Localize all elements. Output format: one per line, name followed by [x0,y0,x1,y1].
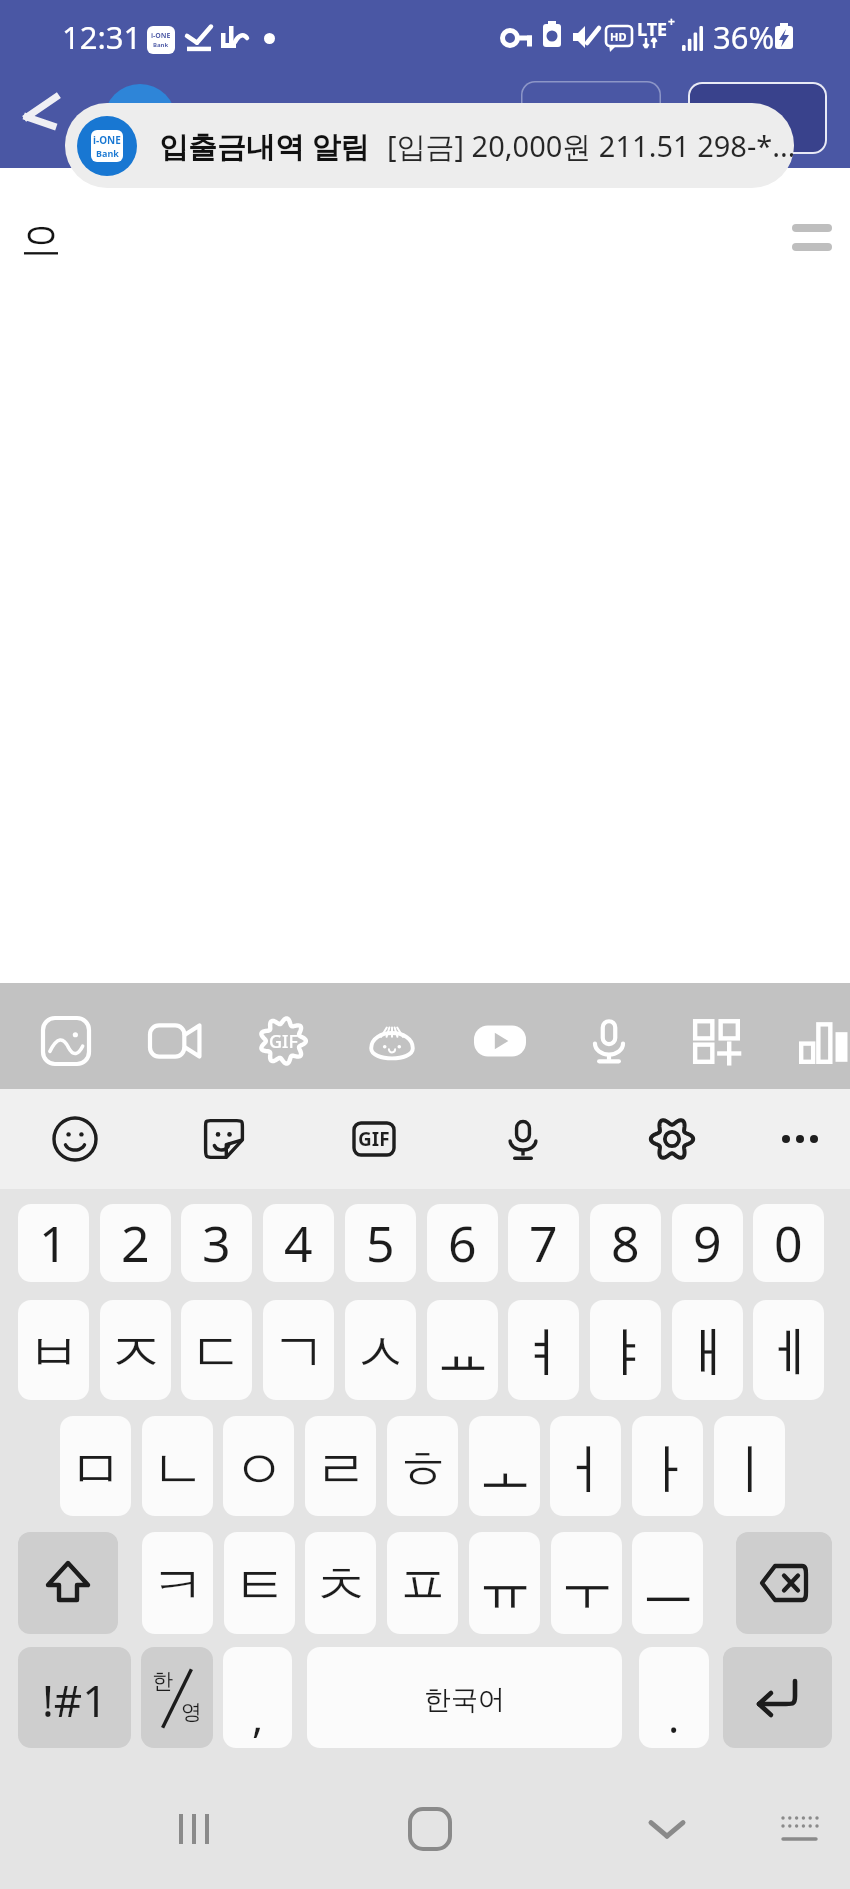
staticText: ㅕ [517,1319,571,1387]
button[interactable]: 9 [672,1204,743,1282]
staticText: ㅜ [560,1552,614,1620]
button[interactable]: 4 [263,1204,334,1282]
button[interactable]: Home [395,1794,465,1864]
button[interactable]: Sticker [358,1007,426,1075]
staticText: 한 [152,1668,173,1694]
button[interactable]: ㅅ [345,1300,416,1400]
button[interactable]: Settings [640,1107,704,1171]
button[interactable]: Apps [683,1007,751,1075]
staticText: 9 [693,1209,722,1277]
staticText: !#1 [42,1670,108,1730]
button[interactable]: More options [768,1107,832,1171]
button[interactable]: , [223,1647,292,1748]
button[interactable]: Enter [723,1647,832,1748]
button[interactable]: ㅗ [469,1416,540,1516]
staticText: ㅑ [599,1319,653,1387]
button[interactable]: ㅋ [142,1532,213,1634]
button[interactable]: ㄱ [263,1300,334,1400]
button[interactable]: Hide keyboard [632,1794,702,1864]
button[interactable]: Poll [788,1007,850,1075]
staticText: i-ONE [93,133,121,147]
button[interactable]: ㅏ [632,1416,703,1516]
button[interactable]: ㅔ [753,1300,824,1400]
staticText: 7 [529,1209,558,1277]
button[interactable]: ㅈ [100,1300,171,1400]
staticText: ㅋ [151,1552,205,1620]
button[interactable]: . [639,1647,709,1748]
staticText: i-ONE [151,31,171,41]
staticText: 3 [202,1209,231,1277]
button[interactable]: ㅣ [714,1416,785,1516]
button[interactable]: ㅜ [551,1532,622,1634]
button[interactable]: 2 [100,1204,171,1282]
button[interactable]: ㅓ [550,1416,621,1516]
staticText: ㅍ [396,1552,450,1620]
staticText: GIF [358,1126,390,1152]
staticText: . [668,1688,680,1745]
button[interactable]: !#1 [18,1647,131,1748]
button[interactable]: Back [14,85,78,149]
button[interactable]: Option [521,81,661,157]
button[interactable]: 0 [753,1204,824,1282]
button[interactable]: 3 [181,1204,252,1282]
button[interactable]: Backspace [736,1532,832,1634]
button[interactable]: ㅍ [387,1532,458,1634]
button[interactable]: 5 [345,1204,416,1282]
button[interactable]: ㅊ [305,1532,376,1634]
button[interactable]: Voice input [491,1107,555,1171]
staticText: 1 [39,1209,68,1277]
button[interactable]: ㅐ [672,1300,743,1400]
button[interactable]: ㄷ [181,1300,252,1400]
staticText: ㅗ [478,1436,532,1504]
button[interactable]: Image [32,1007,100,1075]
button[interactable]: Shift [18,1532,118,1634]
staticText: 2 [121,1209,150,1277]
button[interactable]: ㅇ [223,1416,294,1516]
staticText: ㄴ [151,1436,205,1504]
button[interactable]: Change keyboard [765,1794,835,1864]
button[interactable]: ㅂ [18,1300,89,1400]
button[interactable]: 한국어 [307,1647,622,1748]
button[interactable]: 8 [590,1204,661,1282]
staticText: ㅛ [436,1319,490,1387]
button[interactable]: ㅌ [224,1532,295,1634]
button[interactable]: 6 [427,1204,498,1282]
button[interactable]: ㅛ [427,1300,498,1400]
button[interactable]: i-ONE [65,103,794,188]
staticText: ㅔ [762,1319,816,1387]
staticText: ㄹ [314,1436,368,1504]
button[interactable]: ㅡ [632,1532,703,1634]
button[interactable]: Korean / English [141,1647,213,1748]
staticText: + [668,13,675,29]
staticText: 12:31 [62,16,142,58]
button[interactable]: ㅁ [60,1416,131,1516]
button[interactable]: GIF [342,1107,406,1171]
staticText: GIF [269,1029,298,1054]
button[interactable]: 7 [508,1204,579,1282]
button[interactable]: Sticker [192,1107,256,1171]
button[interactable]: Video [141,1007,209,1075]
button[interactable]: Emoji [43,1107,107,1171]
staticText: 4 [284,1209,313,1277]
button[interactable]: Send [688,82,827,154]
staticText: , [252,1688,264,1745]
button[interactable]: ㅠ [469,1532,540,1634]
button[interactable]: Menu [782,206,842,266]
button[interactable]: ㄴ [142,1416,213,1516]
button[interactable]: 1 [18,1204,89,1282]
button[interactable]: ㅎ [387,1416,458,1516]
staticText: ㅐ [681,1319,735,1387]
staticText: ㅓ [559,1436,613,1504]
button[interactable]: GIF [249,1007,317,1075]
button[interactable]: ㄹ [305,1416,376,1516]
staticText: 입출금내역 알림 [159,126,370,166]
staticText: ㅏ [641,1436,695,1504]
staticText: LTE [637,17,668,42]
button[interactable]: Voice [575,1007,643,1075]
staticText: 0 [774,1209,803,1277]
button[interactable]: YouTube [466,1007,534,1075]
button[interactable]: Recents [159,1794,229,1864]
button[interactable]: ㅑ [590,1300,661,1400]
staticText: 영 [181,1699,202,1725]
button[interactable]: ㅕ [508,1300,579,1400]
